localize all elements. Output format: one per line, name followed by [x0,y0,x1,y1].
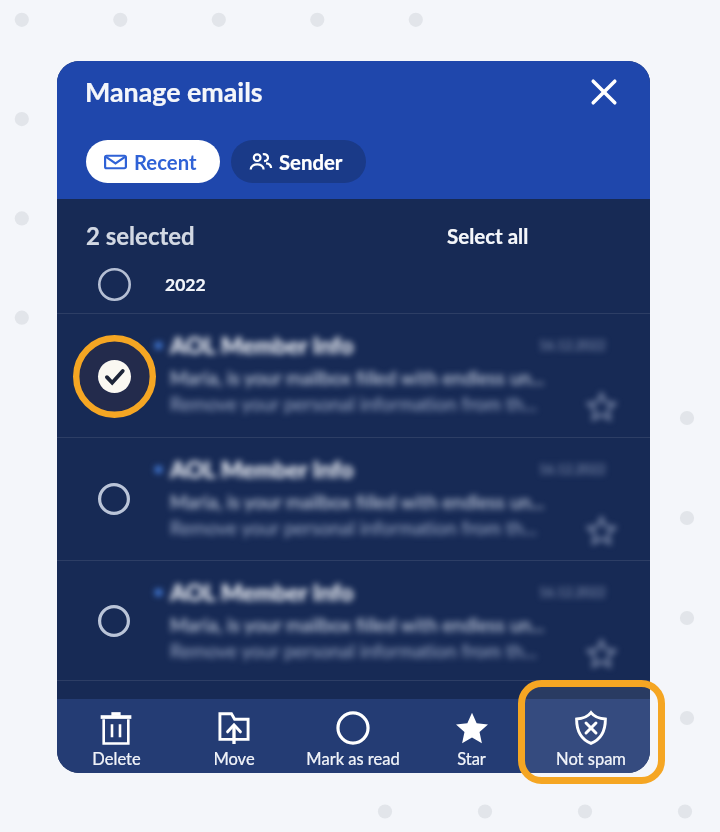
staticText: 16.12.2022 [539,461,606,477]
staticText: AOL Member Info [170,331,354,359]
staticText: Remove your personal information from th… [170,392,537,415]
button[interactable]: Delete [57,699,175,773]
staticText: AOL Member Info [170,455,354,483]
staticText: Remove your personal information from th… [170,639,537,662]
button[interactable]: AOL Member Info [57,438,650,560]
staticText: Mark as read [306,749,400,769]
button[interactable]: Mark as read [293,699,412,773]
staticText: 16.12.2022 [539,584,606,600]
button[interactable]: Not spam [531,699,650,773]
staticText: AOL Member Info [170,578,354,606]
button[interactable]: AOL Member Info [57,314,650,437]
staticText: Star [457,749,486,769]
button[interactable]: Select all [441,220,535,253]
button[interactable]: 2022 [57,255,650,313]
button[interactable]: Star [412,699,531,773]
staticText: Maria, is your mailbox filled with endle… [170,366,545,389]
staticText: Maria, is your mailbox filled with endle… [170,490,545,513]
button[interactable]: Sender [231,140,366,183]
staticText: 2022 [165,274,206,295]
staticText: Manage emails [85,76,263,108]
staticText: 16.12.2022 [539,337,606,353]
button[interactable]: Move [175,699,293,773]
button[interactable]: Close [582,70,626,114]
staticText: Sender [279,150,343,174]
staticText: Select all [447,224,529,249]
staticText: 2 selected [86,221,195,250]
button[interactable]: Recent [86,140,220,183]
staticText: Remove your personal information from th… [170,516,537,539]
staticText: Not spam [556,749,626,769]
staticText: Move [213,749,255,769]
staticText: Delete [92,749,141,769]
staticText: Maria, is your mailbox filled with endle… [170,613,545,636]
button[interactable]: AOL Member Info [57,561,650,680]
staticText: Recent [134,150,197,174]
